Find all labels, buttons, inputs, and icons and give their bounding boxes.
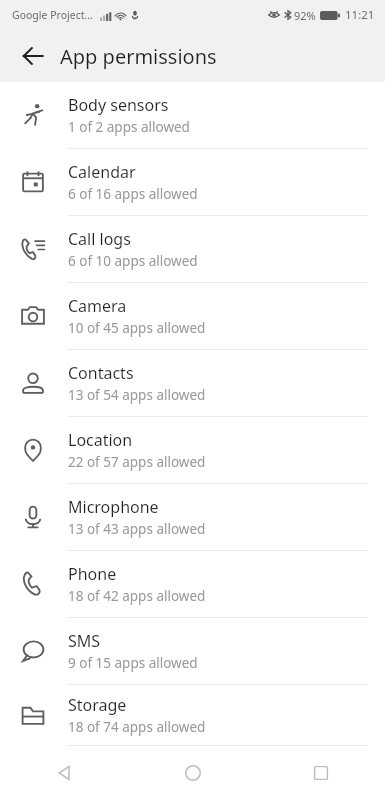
staticText: Call logs xyxy=(68,228,131,250)
button[interactable]: Phone xyxy=(0,551,385,617)
staticText: Contacts xyxy=(68,362,134,384)
button[interactable]: Call logs xyxy=(0,216,385,282)
button[interactable]: Recent apps xyxy=(257,746,385,800)
staticText: 10 of 45 apps allowed xyxy=(68,319,206,337)
button[interactable]: Body sensors xyxy=(0,82,385,148)
staticText: Body sensors xyxy=(68,94,169,116)
button[interactable]: Contacts xyxy=(0,350,385,416)
staticText: 92% xyxy=(294,8,316,23)
staticText: 6 of 10 apps allowed xyxy=(68,252,198,270)
staticText: Phone xyxy=(68,563,117,585)
staticText: 6 of 16 apps allowed xyxy=(68,185,198,203)
staticText: 22 of 57 apps allowed xyxy=(68,453,206,471)
button[interactable]: Calendar xyxy=(0,149,385,215)
staticText: 18 of 74 apps allowed xyxy=(68,718,206,736)
button[interactable]: SMS xyxy=(0,618,385,684)
staticText: Google Project... xyxy=(12,8,93,22)
staticText: Calendar xyxy=(68,161,136,183)
staticText: Microphone xyxy=(68,496,159,518)
button[interactable]: Location xyxy=(0,417,385,483)
button[interactable]: Back xyxy=(0,746,129,800)
staticText: App permissions xyxy=(60,43,217,70)
staticText: SMS xyxy=(68,630,101,652)
staticText: 11:21 xyxy=(345,7,375,23)
staticText: 18 of 42 apps allowed xyxy=(68,587,206,605)
staticText: 9 of 15 apps allowed xyxy=(68,654,198,672)
button[interactable]: Home xyxy=(129,746,257,800)
staticText: 1 of 2 apps allowed xyxy=(68,118,190,136)
button[interactable]: Camera xyxy=(0,283,385,349)
staticText: 13 of 54 apps allowed xyxy=(68,386,206,404)
staticText: Storage xyxy=(68,694,127,716)
staticText: Camera xyxy=(68,295,127,317)
button[interactable]: Microphone xyxy=(0,484,385,550)
button[interactable]: Back xyxy=(9,32,57,80)
staticText: Location xyxy=(68,429,133,451)
staticText: 13 of 43 apps allowed xyxy=(68,520,206,538)
button[interactable]: Storage xyxy=(0,685,385,745)
